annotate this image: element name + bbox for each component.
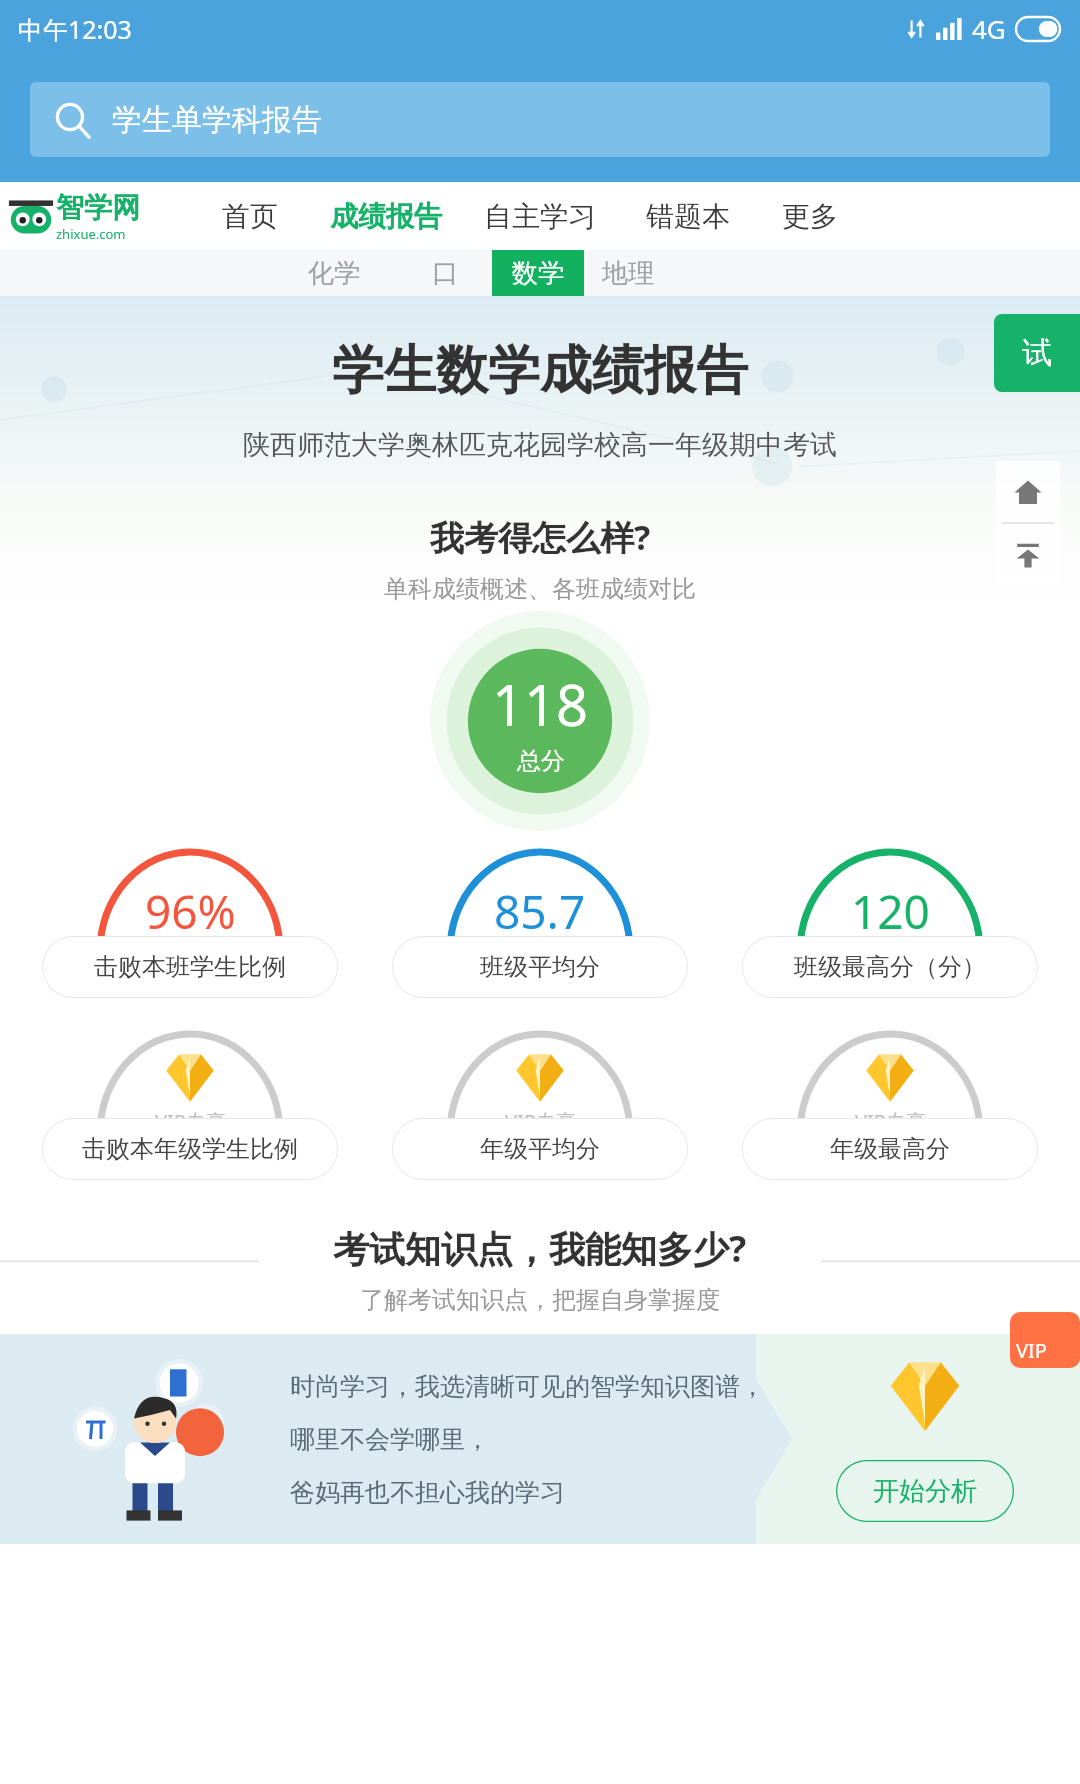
- button[interactable]: VIP专享: [380, 1028, 700, 1188]
- staticText: 年级最高分: [830, 1134, 950, 1164]
- staticText: 学生单学科报告: [112, 101, 322, 139]
- button[interactable]: 96%: [30, 846, 350, 1006]
- staticText: 地理: [602, 257, 654, 290]
- staticText: 班级最高分（分）: [794, 952, 986, 982]
- button[interactable]: 成绩报告: [330, 193, 442, 240]
- staticText: VIP专享: [505, 1108, 576, 1135]
- staticText: 智学网: [56, 190, 140, 225]
- staticText: 开始分析: [873, 1475, 977, 1508]
- button[interactable]: 数学: [492, 250, 584, 296]
- staticText: 击败本年级学生比例: [82, 1134, 298, 1164]
- staticText: 学生数学成绩报告: [332, 338, 748, 404]
- button[interactable]: VIP专享: [30, 1028, 350, 1188]
- staticText: 试: [1022, 334, 1052, 372]
- staticText: 自主学习: [484, 199, 596, 234]
- button[interactable]: 120: [730, 846, 1050, 1006]
- staticText: VIP专享: [855, 1108, 926, 1135]
- staticText: 陕西师范大学奥林匹克花园学校高一年级期中考试: [243, 428, 837, 462]
- staticText: 4G: [972, 11, 1006, 46]
- staticText: 120: [851, 880, 930, 943]
- staticText: 85.7: [494, 880, 586, 943]
- staticText: 成绩报告: [330, 199, 442, 234]
- staticText: zhixue.com: [56, 225, 126, 243]
- staticText: 中午12:03: [18, 12, 132, 46]
- button[interactable]: 首页: [222, 193, 278, 240]
- button[interactable]: 85.7: [380, 846, 700, 1006]
- staticText: 哪里不会学哪里，: [290, 1424, 490, 1455]
- staticText: 我考得怎么样?: [430, 514, 651, 560]
- button[interactable]: VIP专享: [730, 1028, 1050, 1188]
- staticText: 首页: [222, 199, 278, 234]
- button[interactable]: 自主学习: [484, 193, 596, 240]
- button[interactable]: 试: [994, 314, 1080, 392]
- staticText: 口: [432, 257, 458, 290]
- button[interactable]: 开始分析: [836, 1460, 1014, 1522]
- staticText: 数学: [512, 257, 564, 290]
- button[interactable]: Scroll to top: [996, 524, 1060, 586]
- staticText: 击败本班学生比例: [94, 952, 286, 982]
- staticText: 爸妈再也不担心我的学习: [290, 1477, 565, 1508]
- staticText: 班级平均分: [480, 952, 600, 982]
- staticText: 更多: [782, 199, 838, 234]
- staticText: 96%: [145, 880, 236, 943]
- staticText: 时尚学习，我选清晰可见的智学知识图谱，: [290, 1371, 765, 1402]
- staticText: VIP: [1016, 1337, 1047, 1364]
- staticText: 了解考试知识点，把握自身掌握度: [360, 1285, 720, 1315]
- staticText: 考试知识点，我能知多少?: [333, 1224, 747, 1273]
- staticText: 118: [492, 666, 589, 742]
- staticText: 单科成绩概述、各班成绩对比: [384, 574, 696, 604]
- button[interactable]: 更多: [782, 193, 838, 240]
- button[interactable]: 学生单学科报告: [30, 82, 1050, 157]
- button[interactable]: Home: [996, 461, 1060, 523]
- button[interactable]: 错题本: [646, 193, 730, 240]
- staticText: VIP专享: [155, 1108, 226, 1135]
- staticText: 总分: [517, 746, 565, 776]
- staticText: 化学: [308, 257, 360, 290]
- staticText: 错题本: [646, 199, 730, 234]
- button[interactable]: VIP: [1010, 1312, 1080, 1368]
- staticText: 年级平均分: [480, 1134, 600, 1164]
